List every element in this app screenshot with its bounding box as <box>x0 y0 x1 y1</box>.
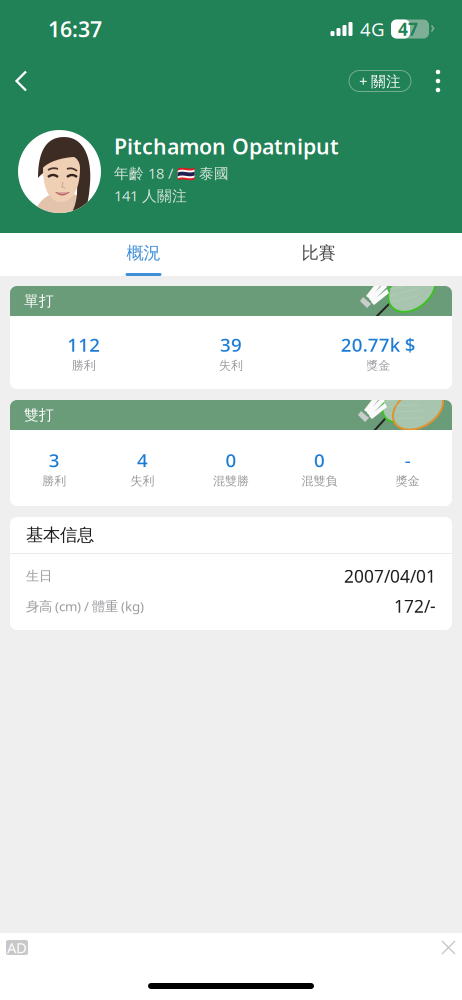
button[interactable]: Back <box>0 58 45 104</box>
staticText: 失利 <box>131 473 155 488</box>
button[interactable]: 概況 <box>56 233 231 276</box>
staticText: 3 <box>49 448 60 472</box>
staticText: 失利 <box>219 358 243 373</box>
staticText: Pitchamon Opatniput <box>114 132 339 160</box>
staticText: 47 <box>398 17 418 40</box>
staticText: 基本信息 <box>26 524 94 546</box>
staticText: 112 <box>67 332 100 357</box>
staticText: + 關注 <box>359 71 401 91</box>
staticText: 4 <box>137 448 148 472</box>
staticText: AD <box>7 938 27 957</box>
button[interactable]: + 關注 <box>349 58 411 104</box>
staticText: 39 <box>220 332 242 357</box>
staticText: 年齡 18 / 🇹🇭 泰國 <box>114 163 229 183</box>
button[interactable]: Close ad <box>441 933 462 955</box>
staticText: 獎金 <box>366 358 390 373</box>
staticText: 2007/04/01 <box>344 564 436 587</box>
staticText: 混雙勝 <box>213 473 249 488</box>
staticText: 生日 <box>26 568 52 584</box>
staticText: 4G <box>360 17 385 41</box>
staticText: 172/- <box>394 594 436 617</box>
staticText: 單打 <box>24 292 54 310</box>
staticText: - <box>405 448 411 472</box>
staticText: 0 <box>225 448 236 472</box>
button[interactable]: 比賽 <box>231 233 406 276</box>
staticText: 概況 <box>126 242 160 264</box>
staticText: 雙打 <box>24 406 54 424</box>
staticText: 141 人關注 <box>114 186 187 205</box>
staticText: 混雙負 <box>301 473 337 488</box>
staticText: 獎金 <box>396 473 420 488</box>
staticText: 比賽 <box>301 242 335 264</box>
staticText: 16:37 <box>48 15 102 43</box>
staticText: 勝利 <box>42 473 66 488</box>
button[interactable]: More options <box>411 58 462 104</box>
staticText: 0 <box>314 448 325 472</box>
staticText: 勝利 <box>72 358 96 373</box>
staticText: 20.77k $ <box>341 332 416 357</box>
staticText: 身高 (cm) / 體重 (kg) <box>26 597 144 615</box>
